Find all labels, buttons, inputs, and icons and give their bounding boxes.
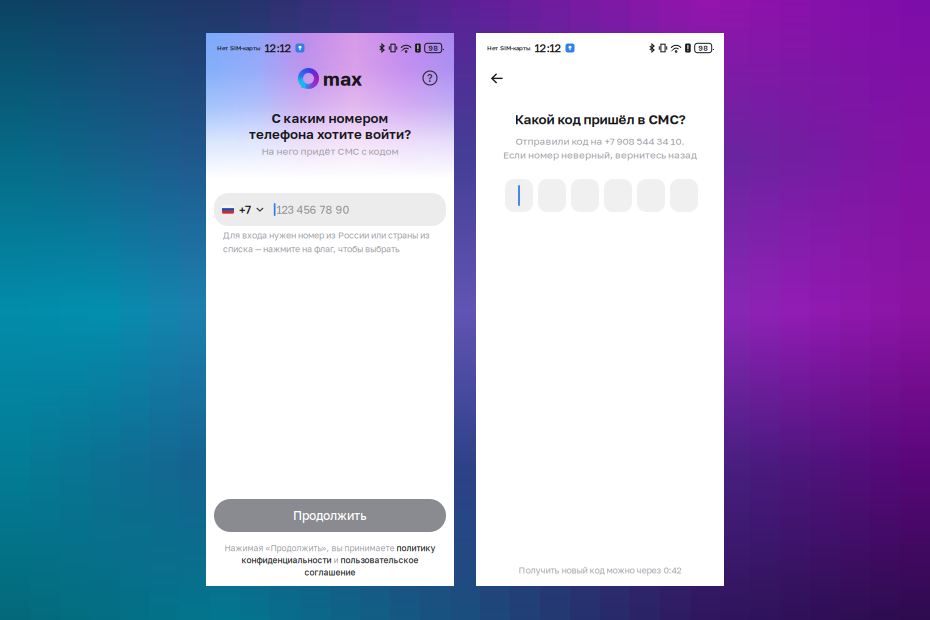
button[interactable]: Цифра кода 3 [571,179,599,212]
staticText: пользовательское [340,555,418,565]
button[interactable]: +7 [214,193,446,226]
staticText: Нет SIM-карты [487,44,531,52]
button[interactable]: Назад [485,67,509,90]
staticText: Продолжить [293,508,367,523]
button[interactable]: Цифра кода 4 [604,179,632,212]
staticText: Какой код пришёл в СМС? [514,111,685,127]
button[interactable]: Продолжить [214,499,446,532]
button[interactable]: Цифра кода 1 [505,179,533,212]
staticText: На него придёт СМС с кодом [261,145,398,157]
staticText: +7 [239,203,251,216]
staticText: С каким номером [271,110,388,126]
staticText: Нет SIM-карты [217,44,261,52]
staticText: конфиденциальности [241,555,331,565]
staticText: и [331,555,340,565]
staticText: списка — нажмите на флаг, чтобы выбрать [223,244,400,254]
button[interactable]: Цифра кода 2 [538,179,566,212]
staticText: max [323,67,362,90]
staticText: Для входа нужен номер из России или стра… [223,230,430,241]
staticText: 12:12 [264,41,291,55]
staticText: ? [427,72,433,84]
staticText: 123 456 78 90 [276,203,349,216]
button[interactable]: Цифра кода 5 [637,179,665,212]
staticText: соглашение [304,567,355,577]
staticText: Получить новый код можно через 0:42 [518,565,681,576]
staticText: Отправили код на +7 908 544 34 10. [515,135,684,147]
staticText: 98 [428,43,438,52]
staticText: 98 [698,43,708,52]
staticText: политику [396,543,435,553]
staticText: Нажимая «Продолжить», вы принимаете [224,543,396,553]
staticText: Если номер неверный, вернитесь назад [503,149,697,161]
staticText: телефона хотите войти? [249,126,411,142]
staticText: 12:12 [534,41,561,55]
button[interactable]: Цифра кода 6 [670,179,698,212]
button[interactable]: Справка [418,66,442,90]
